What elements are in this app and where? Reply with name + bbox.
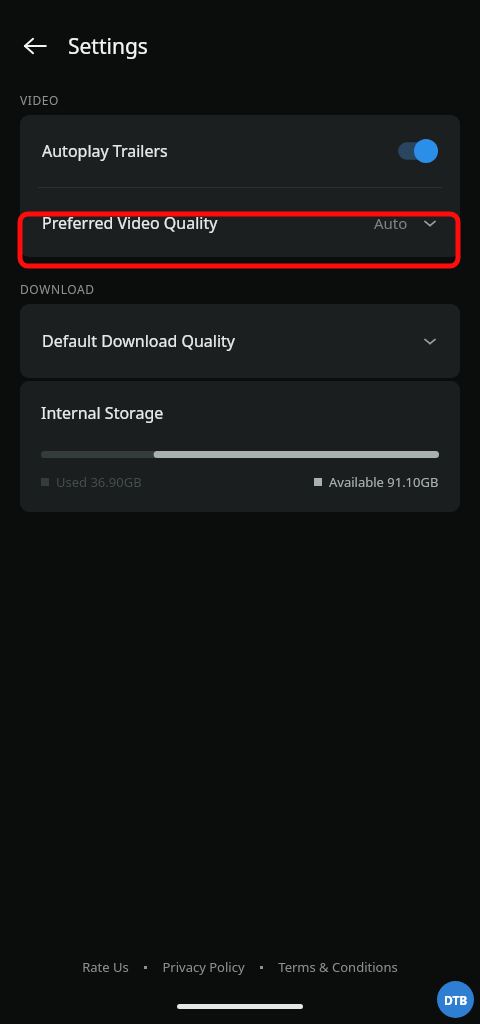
staticText: Autoplay Trailers [42, 140, 168, 162]
staticText: Rate Us [82, 958, 129, 976]
staticText: VIDEO [20, 92, 60, 108]
staticText: Used 36.90GB [56, 473, 142, 491]
button[interactable]: Preferred Video Quality [20, 188, 460, 257]
staticText: DOWNLOAD [20, 281, 95, 297]
staticText: Internal Storage [41, 402, 164, 424]
button[interactable]: Terms & Conditions [272, 954, 404, 980]
button[interactable]: Back [18, 29, 52, 63]
staticText: Auto [374, 213, 408, 233]
staticText: Settings [68, 32, 148, 61]
staticText: Preferred Video Quality [42, 212, 218, 234]
staticText: DTB [444, 992, 468, 1008]
button[interactable]: Rate Us [76, 954, 135, 980]
staticText: Default Download Quality [42, 330, 235, 352]
button[interactable]: Autoplay Trailers [20, 115, 460, 187]
button[interactable]: Privacy Policy [156, 954, 251, 980]
staticText: Privacy Policy [162, 958, 245, 976]
staticText: Available 91.10GB [329, 473, 439, 491]
staticText: Terms & Conditions [278, 958, 398, 976]
button[interactable]: Default Download Quality [20, 304, 460, 378]
